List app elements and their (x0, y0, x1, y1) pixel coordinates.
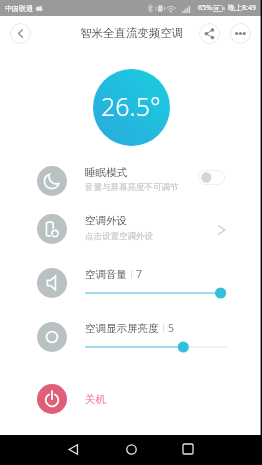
button[interactable]: Sleep mode toggle (198, 170, 225, 185)
staticText: 关机 (85, 393, 106, 406)
staticText: 26.5° (101, 89, 161, 123)
button[interactable]: 关机 (0, 375, 262, 423)
staticText: 7 (136, 267, 143, 281)
button[interactable]: Back (10, 23, 31, 44)
staticText: 65% (198, 3, 212, 13)
staticText: 空调外设 (85, 214, 127, 227)
button[interactable]: More options (230, 23, 251, 44)
button[interactable]: 空调显示屏亮度 slider (77, 340, 235, 354)
button[interactable]: Recents (174, 435, 202, 463)
staticText: 晚上8:49 (228, 3, 256, 13)
button[interactable]: 空调音量 slider (77, 286, 235, 300)
button[interactable]: 26.5° (93, 69, 170, 146)
staticText: 中国联通 (5, 4, 33, 13)
button[interactable]: 空调外设 (0, 205, 262, 253)
button[interactable]: 睡眠模式 (0, 157, 262, 205)
staticText: 空调音量 (85, 268, 127, 281)
button[interactable]: Back (59, 435, 87, 463)
button[interactable]: Home (117, 435, 145, 463)
staticText: 音量与屏幕亮度不可调节 (85, 182, 179, 193)
staticText: 睡眠模式 (85, 166, 127, 179)
button[interactable]: Share (199, 23, 220, 44)
staticText: 空调显示屏亮度 (85, 322, 159, 335)
staticText: 5 (168, 321, 175, 335)
staticText: 智米全直流变频空调 (80, 26, 184, 40)
staticText: 点击设置空调外设 (85, 231, 153, 242)
